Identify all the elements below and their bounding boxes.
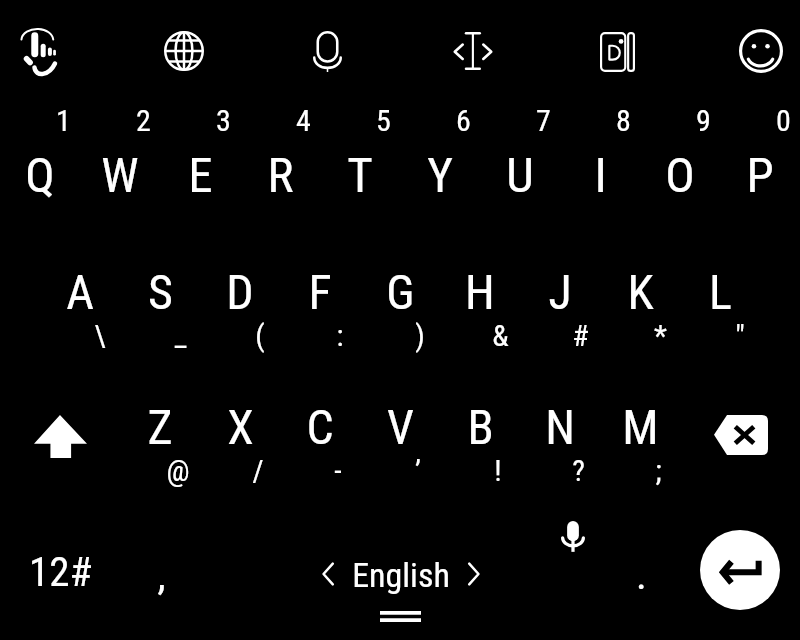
button[interactable]: A xyxy=(42,264,118,320)
button[interactable]: 9 xyxy=(665,103,741,138)
button[interactable]: . xyxy=(603,551,679,599)
button[interactable]: Backspace xyxy=(714,415,768,455)
button[interactable]: _ xyxy=(142,318,218,353)
button[interactable]: , xyxy=(123,551,199,599)
button[interactable]: Space xyxy=(380,611,421,622)
staticText: M xyxy=(622,399,659,455)
button[interactable]: N xyxy=(522,399,598,455)
button[interactable]: K xyxy=(602,264,678,320)
staticText: P xyxy=(746,147,774,204)
button[interactable]: 7 xyxy=(505,103,581,138)
button[interactable]: 3 xyxy=(185,103,261,138)
button[interactable]: 8 xyxy=(585,103,661,138)
staticText: 1 xyxy=(56,103,71,138)
button[interactable]: ) xyxy=(382,318,458,353)
button[interactable]: O xyxy=(642,147,718,204)
staticText: 4 xyxy=(296,103,311,138)
staticText: 6 xyxy=(456,103,471,138)
button[interactable]: Q xyxy=(2,147,78,204)
staticText: G xyxy=(386,264,415,320)
button[interactable]: B xyxy=(442,399,518,455)
button[interactable]: C xyxy=(282,399,358,455)
staticText: Z xyxy=(147,399,173,455)
button[interactable]: 2 xyxy=(105,103,181,138)
button[interactable]: Previous language xyxy=(320,561,336,587)
button[interactable]: & xyxy=(462,318,538,353)
button[interactable]: English xyxy=(341,555,461,595)
button[interactable]: ? xyxy=(540,453,616,488)
button[interactable]: X xyxy=(202,399,278,455)
staticText: ; xyxy=(655,453,662,488)
staticText: V xyxy=(387,399,414,455)
button[interactable]: P xyxy=(722,147,798,204)
button[interactable]: Handwriting xyxy=(16,24,60,78)
staticText: T xyxy=(347,147,373,204)
button[interactable]: Shift xyxy=(34,415,87,458)
staticText: Q xyxy=(25,147,55,204)
button[interactable]: 12# xyxy=(15,548,105,596)
staticText: , xyxy=(157,551,166,599)
button[interactable]: Emoji xyxy=(739,29,783,73)
button[interactable]: 0 xyxy=(745,103,800,138)
button[interactable]: Voice input xyxy=(313,31,342,72)
button[interactable]: 1 xyxy=(25,103,101,138)
staticText: 12# xyxy=(29,548,92,596)
button[interactable]: 5 xyxy=(345,103,421,138)
staticText: Y xyxy=(427,147,453,204)
staticText: A xyxy=(66,264,94,320)
button[interactable]: Stickers xyxy=(600,32,635,72)
button[interactable]: E xyxy=(162,147,238,204)
button[interactable]: M xyxy=(602,399,678,455)
staticText: S xyxy=(148,264,173,320)
button[interactable]: 4 xyxy=(265,103,341,138)
button[interactable]: Change language xyxy=(164,31,204,71)
staticText: " xyxy=(735,318,745,353)
staticText: ) xyxy=(415,318,425,353)
button[interactable]: Enter xyxy=(700,530,780,610)
button[interactable]: W xyxy=(82,147,158,204)
staticText: X xyxy=(227,399,254,455)
staticText: N xyxy=(545,399,575,455)
button[interactable]: S xyxy=(122,264,198,320)
button[interactable]: - xyxy=(300,453,376,488)
button[interactable]: @ xyxy=(140,453,216,488)
button[interactable]: \ xyxy=(62,318,138,353)
button[interactable]: I xyxy=(562,147,638,204)
button[interactable]: Z xyxy=(122,399,198,455)
button[interactable]: ’ xyxy=(380,453,456,488)
button[interactable]: ; xyxy=(620,453,696,488)
button[interactable]: # xyxy=(542,318,618,353)
button[interactable]: D xyxy=(202,264,278,320)
button[interactable]: J xyxy=(522,264,598,320)
staticText: _ xyxy=(174,318,187,353)
staticText: L xyxy=(709,264,732,320)
button[interactable]: F xyxy=(282,264,358,320)
staticText: U xyxy=(506,147,534,204)
staticText: 3 xyxy=(216,103,231,138)
button[interactable]: Text editing xyxy=(454,32,492,70)
button[interactable]: " xyxy=(702,318,778,353)
button[interactable]: ( xyxy=(222,318,298,353)
button[interactable]: R xyxy=(242,147,318,204)
staticText: O xyxy=(665,147,695,204)
button[interactable]: U xyxy=(482,147,558,204)
button[interactable]: H xyxy=(442,264,518,320)
button[interactable]: : xyxy=(302,318,378,353)
button[interactable]: 6 xyxy=(425,103,501,138)
button[interactable]: L xyxy=(682,264,758,320)
button[interactable]: / xyxy=(220,453,296,488)
button[interactable]: G xyxy=(362,264,438,320)
staticText: : xyxy=(336,318,344,353)
staticText: * xyxy=(654,318,667,353)
button[interactable]: Y xyxy=(402,147,478,204)
button[interactable]: Voice input xyxy=(561,521,585,553)
staticText: ’ xyxy=(415,453,421,488)
button[interactable]: * xyxy=(622,318,698,353)
button[interactable]: V xyxy=(362,399,438,455)
button[interactable]: T xyxy=(322,147,398,204)
staticText: # xyxy=(572,318,589,353)
button[interactable]: ! xyxy=(460,453,536,488)
button[interactable]: Next language xyxy=(466,561,482,587)
staticText: C xyxy=(306,399,334,455)
staticText: K xyxy=(627,264,654,320)
